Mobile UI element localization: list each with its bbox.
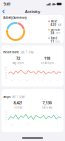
staticText: T xyxy=(34,80,35,81)
staticText: T xyxy=(19,80,20,81)
staticText: T xyxy=(19,124,20,126)
staticText: peak bpm xyxy=(41,61,54,65)
staticText: Stand xyxy=(51,36,58,40)
staticText: 11 xyxy=(51,40,55,43)
staticText: avg bpm xyxy=(12,61,23,65)
staticText: daily avg xyxy=(42,106,53,109)
staticText: T xyxy=(34,124,35,126)
staticText: Last 7 days xyxy=(20,50,33,54)
staticText: F xyxy=(42,80,43,81)
staticText: 40 xyxy=(5,77,7,79)
staticText: Activity xyxy=(25,9,40,14)
staticText: 120 xyxy=(4,66,7,68)
staticText: min xyxy=(55,31,60,35)
staticText: M xyxy=(11,80,12,81)
staticText: Steps xyxy=(3,95,10,98)
staticText: 420 xyxy=(51,23,57,26)
staticText: 9k xyxy=(5,114,7,115)
staticText: S xyxy=(57,80,58,81)
staticText: Last 7 days xyxy=(11,95,24,98)
staticText: 6k xyxy=(5,116,7,118)
staticText: 8,421 xyxy=(13,100,22,105)
staticText: 38 xyxy=(51,31,55,35)
staticText: W xyxy=(26,80,27,81)
staticText: 7,130 xyxy=(43,100,52,105)
staticText: Move xyxy=(51,19,58,23)
staticText: S xyxy=(50,80,51,81)
staticText: 60 xyxy=(5,74,7,76)
staticText: 80 xyxy=(5,72,7,73)
staticText: Heart Rate xyxy=(3,50,19,54)
staticText: kcal xyxy=(57,23,61,26)
staticText: Activity Summary xyxy=(3,16,26,19)
staticText: 118 xyxy=(44,56,50,61)
staticText: 9:41 xyxy=(3,1,10,7)
staticText: Exercise xyxy=(51,28,61,31)
staticText: 72 xyxy=(16,56,20,61)
staticText: hrs xyxy=(55,40,59,43)
staticText: today xyxy=(14,106,21,109)
staticText: 0 xyxy=(6,121,7,123)
staticText: 3k xyxy=(5,119,7,121)
staticText: W xyxy=(26,124,27,126)
button[interactable]: Back xyxy=(0,8,7,15)
